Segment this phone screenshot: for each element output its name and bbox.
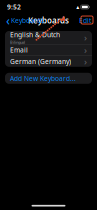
button[interactable]: English & Dutch	[5, 31, 92, 44]
staticText: ›	[84, 31, 87, 44]
staticText: German (Germany)	[10, 57, 71, 66]
button[interactable]: German (Germany)	[5, 56, 92, 67]
staticText: English & Dutch	[10, 30, 60, 39]
staticText: ▲	[60, 14, 65, 22]
staticText: ▲	[76, 5, 79, 9]
staticText: ›	[84, 55, 87, 67]
button[interactable]: ‹	[3, 10, 47, 30]
staticText: Keyboards	[28, 15, 69, 26]
staticText: Add New Keyboard...	[10, 74, 76, 83]
staticText: Bilingual	[10, 39, 25, 45]
staticText: Edit	[79, 16, 91, 25]
button[interactable]: Email	[5, 44, 92, 56]
button[interactable]: Add New Keyboard...	[5, 73, 92, 84]
staticText: ‹	[6, 12, 10, 28]
staticText: 9:52	[7, 3, 21, 11]
staticText: Email	[10, 45, 28, 54]
button[interactable]: Edit	[76, 14, 94, 27]
staticText: Keyboards	[11, 16, 44, 25]
staticText: ›	[84, 44, 87, 56]
